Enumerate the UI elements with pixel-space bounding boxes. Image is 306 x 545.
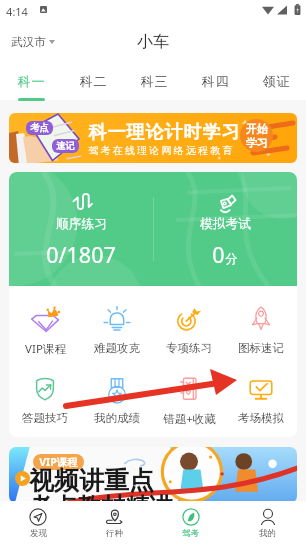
staticText: 专项练习 [166,341,212,355]
staticText: 考点教材精讲 [29,492,173,503]
button[interactable]: 考场模拟 [225,374,297,425]
staticText: 错题+收藏 [163,411,216,427]
button[interactable]: 武汉市 [11,35,55,49]
staticText: 领证 [262,73,290,89]
staticText: 学习 [246,136,268,150]
button[interactable]: 图标速记 [225,304,297,355]
button[interactable]: VIP课程 [9,304,81,357]
button[interactable]: 错题+收藏 [153,374,225,427]
button[interactable]: 我的 [229,501,306,545]
staticText: 我的 [259,528,276,539]
staticText: 难题攻克 [94,341,140,355]
button[interactable]: 科四 [184,64,245,100]
staticText: 考场模拟 [238,411,284,425]
staticText: 速记 [56,140,75,152]
button[interactable]: 模拟考试 [153,172,297,286]
staticText: 武汉市 [11,35,46,49]
staticText: VIP课程 [25,341,66,357]
button[interactable]: 行种 [76,501,152,545]
button[interactable]: 我的成绩 [81,374,153,425]
staticText: 科四 [201,73,229,89]
button[interactable]: 专项练习 [153,304,225,355]
staticText: 0/1807 [46,240,116,269]
staticText: 发现 [30,528,47,539]
staticText: 我的成绩 [94,411,140,425]
button[interactable]: 发现 [0,501,76,545]
button[interactable]: 开始 [240,119,273,152]
button[interactable]: VIP课程 [9,447,297,503]
staticText: 科三 [140,73,168,89]
staticText: 4:14 [6,4,28,19]
button[interactable]: 领证 [245,64,306,100]
button[interactable]: 驾考 [152,501,229,545]
staticText: 开始 [246,122,268,136]
staticText: 科一 [17,73,45,89]
button[interactable]: 科二 [62,64,123,100]
staticText: 顺序练习 [56,216,107,232]
staticText: 0 [212,240,225,269]
button[interactable]: 答题技巧 [9,374,81,425]
staticText: 答题技巧 [22,411,68,425]
staticText: VIP课程 [39,455,78,469]
staticText: 小车 [137,32,169,52]
staticText: 驾考 [182,528,199,539]
staticText: 图标速记 [238,341,284,355]
button[interactable]: 科三 [123,64,184,100]
staticText: 驾考在线理论网络远程教育 [88,144,235,157]
staticText: 考点 [30,122,49,134]
button[interactable]: 科一 [0,64,62,100]
button[interactable]: 顺序练习 [9,172,153,286]
staticText: 视频讲重点 [29,465,154,496]
staticText: 科一理论计时学习 [88,121,240,144]
staticText: 科二 [79,73,107,89]
button[interactable]: 考点 [9,113,297,163]
staticText: 行种 [106,528,123,539]
staticText: 模拟考试 [200,216,251,232]
button[interactable]: 难题攻克 [81,304,153,355]
staticText: 分 [225,251,238,267]
